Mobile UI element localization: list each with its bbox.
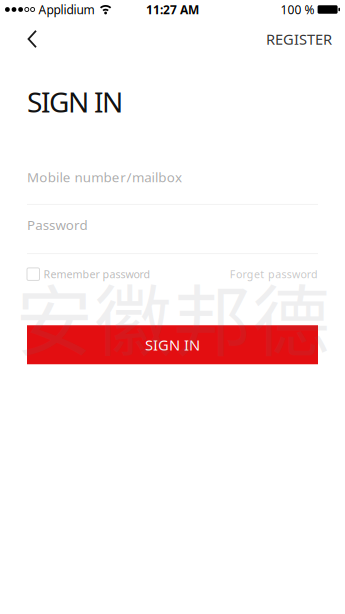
button[interactable]: Back: [0, 20, 48, 58]
staticText: 11:27 AM: [146, 1, 199, 17]
staticText: Forget password: [230, 267, 318, 281]
staticText: REGISTER: [266, 29, 332, 49]
button[interactable]: SIGN IN: [27, 325, 318, 364]
staticText: Password: [27, 216, 87, 234]
button[interactable]: REGISTER: [266, 17, 345, 61]
staticText: Mobile number/mailbox: [27, 168, 182, 186]
staticText: Remember password: [43, 267, 150, 281]
button[interactable]: Forget password: [230, 267, 318, 281]
staticText: SIGN IN: [27, 83, 123, 120]
staticText: 安徽邦德: [15, 260, 329, 372]
button[interactable]: Remember password: [27, 267, 150, 281]
staticText: Applidium: [39, 1, 95, 17]
staticText: 100 %: [281, 1, 315, 17]
staticText: SIGN IN: [145, 335, 200, 354]
